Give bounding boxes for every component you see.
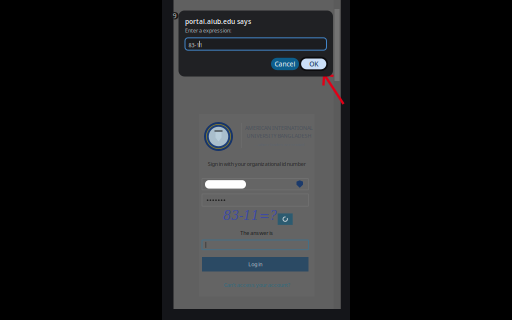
button[interactable]: OK [300,58,327,70]
button[interactable]: Can't access your account? [199,282,314,288]
button[interactable]: Refresh captcha [278,213,293,225]
button[interactable]: Log in [202,257,308,271]
staticText: Can't access your account? [224,281,290,289]
staticText: AMERICAN INTERNATIONAL [245,124,313,132]
staticText: Sign in with your organizational id numb… [208,160,306,168]
staticText: The answer is [240,229,273,237]
staticText: Cancel [274,59,295,68]
staticText: Enter a expression: [185,27,231,34]
staticText: 9 [173,11,177,20]
button[interactable]: Cancel [271,58,299,70]
staticText: Log in [248,261,262,268]
staticText: portal.aiub.edu says [185,17,251,26]
staticText: UNIVERSITY BANGLADESH [246,132,311,139]
staticText: OK [309,59,318,68]
staticText: 83-11=? [223,208,277,223]
staticText: 83-11 [188,42,202,49]
